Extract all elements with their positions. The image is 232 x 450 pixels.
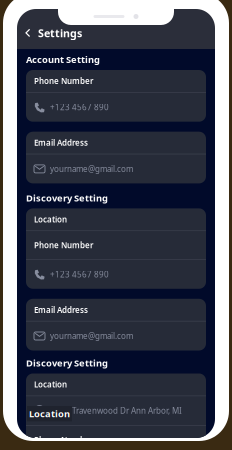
- staticText: Discovery Setting: [26, 192, 108, 204]
- staticText: yourname@gmail.com: [50, 164, 133, 174]
- staticText: +123 4567 890: [50, 269, 109, 280]
- button[interactable]: Settings: [17, 24, 88, 42]
- staticText: Location: [34, 214, 67, 225]
- staticText: Location: [34, 379, 67, 390]
- staticText: Settings: [38, 26, 82, 40]
- staticText: Location: [29, 407, 70, 420]
- staticText: Phone Number: [34, 435, 93, 445]
- staticText: Phone Number: [34, 240, 93, 250]
- staticText: +123 4567 890: [50, 102, 109, 112]
- staticText: Phone Number: [34, 76, 93, 86]
- staticText: Email Address: [34, 304, 88, 315]
- staticText: Email Address: [34, 137, 88, 148]
- staticText: yourname@gmail.com: [50, 331, 133, 341]
- staticText: 2200 Travenwood Dr Ann Arbor, MI: [50, 405, 182, 416]
- staticText: Account Setting: [26, 53, 100, 66]
- staticText: Discovery Setting: [26, 357, 108, 369]
